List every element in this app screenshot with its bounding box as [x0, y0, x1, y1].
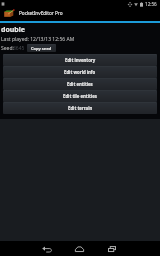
- staticText: PocketInvEditor Pro: [19, 10, 63, 16]
- button[interactable]: Edit tile entities: [3, 90, 157, 102]
- button[interactable]: Edit inventory: [3, 54, 157, 66]
- staticText: Copy seed: [31, 46, 52, 51]
- button[interactable]: Recent apps: [102, 241, 122, 256]
- staticText: Seed:: [1, 45, 16, 52]
- button[interactable]: Edit entities: [3, 78, 157, 90]
- staticText: Edit world info: [64, 69, 96, 75]
- staticText: 8645: [13, 45, 25, 52]
- button[interactable]: Back: [37, 241, 57, 256]
- staticText: Edit entities: [67, 81, 93, 87]
- staticText: Last played: 12/13/13 12:56 AM: [1, 36, 75, 43]
- staticText: Edit inventory: [65, 57, 96, 63]
- button[interactable]: Home: [69, 241, 89, 256]
- staticText: Edit terrain: [68, 105, 93, 111]
- staticText: Edit tile entities: [63, 93, 97, 99]
- button[interactable]: Edit world info: [3, 66, 157, 78]
- staticText: 12:56: [145, 1, 157, 7]
- button[interactable]: Edit terrain: [3, 102, 157, 114]
- button[interactable]: Copy seed: [27, 44, 56, 52]
- staticText: double: [1, 25, 26, 35]
